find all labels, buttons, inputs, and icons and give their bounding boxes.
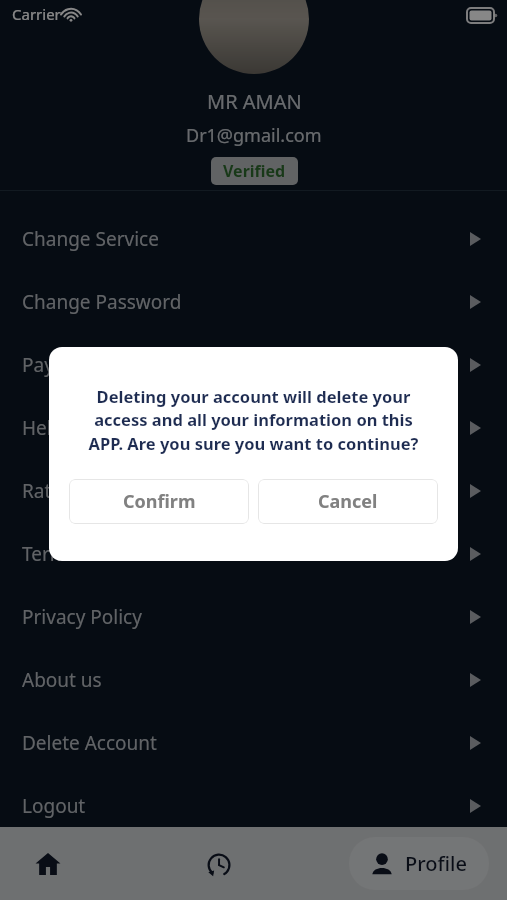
staticText: Dr1@gmail.com [186, 123, 322, 148]
staticText: Payment [22, 352, 470, 378]
staticText: Confirm [123, 489, 196, 514]
staticText: Change Service [22, 226, 470, 252]
staticText: About us [22, 667, 470, 693]
button[interactable]: Change Password [0, 270, 507, 333]
staticText: Cancel [318, 489, 378, 514]
button[interactable]: Payment [0, 333, 507, 396]
button[interactable]: About us [0, 648, 507, 711]
staticText: Terms & Conditions [22, 541, 470, 567]
button[interactable]: Home [28, 844, 68, 884]
button[interactable]: History [198, 844, 238, 884]
button[interactable]: Privacy Policy [0, 585, 507, 648]
button[interactable]: Profile photo [199, 0, 309, 74]
staticText: Change Password [22, 289, 470, 315]
button[interactable]: Delete Account [0, 711, 507, 774]
button[interactable]: Confirm [69, 479, 249, 524]
staticText: Rate us [22, 478, 470, 504]
button[interactable]: Logout [0, 774, 507, 837]
button[interactable]: Rate us [0, 459, 507, 522]
staticText: Verified [223, 160, 286, 182]
button[interactable]: Change Service [0, 207, 507, 270]
staticText: Privacy Policy [22, 604, 470, 630]
staticText: Profile [405, 850, 467, 877]
staticText: Deleting your account will delete your a… [79, 385, 428, 455]
staticText: Logout [22, 793, 470, 819]
staticText: Carrier [12, 4, 61, 24]
button[interactable]: Help [0, 396, 507, 459]
staticText: MR AMAN [207, 88, 302, 115]
staticText: Help [22, 415, 470, 441]
button[interactable]: Verified [211, 157, 298, 185]
button[interactable]: Cancel [258, 479, 438, 524]
button[interactable]: Profile [349, 837, 489, 890]
staticText: Delete Account [22, 730, 470, 756]
button[interactable]: Terms & Conditions [0, 522, 507, 585]
